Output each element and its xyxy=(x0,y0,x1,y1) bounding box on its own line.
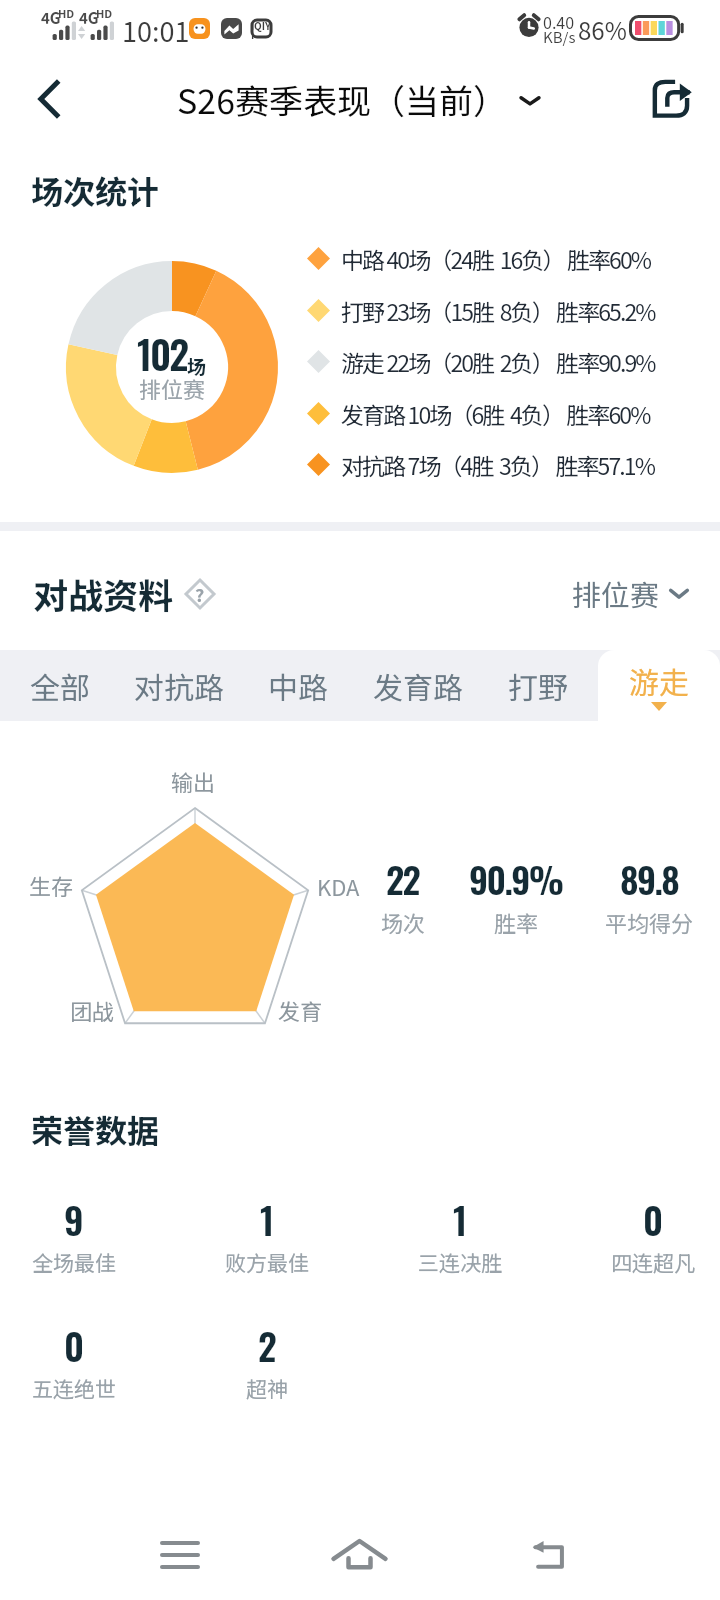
staticText: 三连决胜 xyxy=(418,1247,502,1277)
staticText: 打野 xyxy=(508,664,568,707)
button[interactable]: Back xyxy=(509,1524,589,1586)
button[interactable]: 对抗路 xyxy=(119,650,238,721)
button[interactable]: Help xyxy=(184,578,216,610)
staticText: ? xyxy=(195,581,205,607)
staticText: 22 xyxy=(386,852,420,905)
staticText: 4G xyxy=(41,7,61,29)
staticText: 10:01 xyxy=(122,11,190,50)
button[interactable]: S26赛季表现（当前） xyxy=(177,75,544,124)
staticText: 对抗路 7场（4胜 3负） 胜率57.1% xyxy=(341,448,654,481)
staticText: 0 xyxy=(64,1318,85,1373)
staticText: 2 xyxy=(258,1318,277,1373)
button[interactable]: Share xyxy=(646,73,698,125)
staticText: 场次 xyxy=(381,906,426,938)
staticText: 五连绝世 xyxy=(32,1373,116,1403)
staticText: 中路 xyxy=(268,664,328,707)
staticText: 打野 23场（15胜 8负） 胜率65.2% xyxy=(341,294,655,327)
staticText: 荣誉数据 xyxy=(31,1106,160,1152)
staticText: 9 xyxy=(64,1192,84,1247)
staticText: 全场最佳 xyxy=(32,1247,116,1277)
staticText: KB/s xyxy=(543,26,576,48)
staticText: iQIYI xyxy=(251,18,272,39)
staticText: 场 xyxy=(187,352,207,380)
staticText: 团战 xyxy=(70,994,115,1026)
button[interactable]: Home xyxy=(319,1524,399,1586)
staticText: 89.8 xyxy=(620,852,679,905)
staticText: 90.9% xyxy=(469,852,563,905)
staticText: 0 xyxy=(643,1192,664,1247)
staticText: 平均得分 xyxy=(605,906,694,938)
staticText: 场次统计 xyxy=(31,167,160,213)
staticText: HD xyxy=(58,5,75,21)
staticText: 4G xyxy=(79,7,99,29)
staticText: 胜率 xyxy=(494,906,539,938)
staticText: 1 xyxy=(453,1192,468,1247)
staticText: 对战资料 xyxy=(33,568,174,619)
staticText: 对抗路 xyxy=(134,664,224,707)
staticText: 发育路 10场（6胜 4负） 胜率60% xyxy=(341,397,650,430)
staticText: 中路 40场（24胜 16负） 胜率60% xyxy=(341,242,651,275)
staticText: 败方最佳 xyxy=(225,1247,309,1277)
staticText: 0.40 xyxy=(543,10,575,33)
button[interactable]: 排位赛 xyxy=(572,572,692,614)
staticText: 排位赛 xyxy=(139,372,206,404)
staticText: 输出 xyxy=(171,765,216,797)
button[interactable]: Back xyxy=(24,71,80,127)
staticText: 超神 xyxy=(246,1373,288,1403)
staticText: HD xyxy=(96,5,113,21)
button[interactable]: 游走 xyxy=(598,650,720,721)
staticText: 102 xyxy=(137,324,187,382)
button[interactable]: Recent apps xyxy=(140,1524,220,1586)
button[interactable]: 全部 xyxy=(0,650,119,721)
staticText: 1 xyxy=(260,1192,275,1247)
staticText: 86% xyxy=(578,12,627,47)
staticText: 发育路 xyxy=(373,664,463,707)
staticText: 四连超凡 xyxy=(611,1247,695,1277)
button[interactable]: 打野 xyxy=(478,650,598,721)
staticText: 游走 xyxy=(629,659,689,702)
button[interactable]: 发育路 xyxy=(358,650,478,721)
staticText: 游走 22场（20胜 2负） 胜率90.9% xyxy=(341,345,655,378)
staticText: 排位赛 xyxy=(572,572,660,614)
staticText: 生存 xyxy=(29,869,74,901)
staticText: 发育 xyxy=(278,994,323,1026)
staticText: S26赛季表现（当前） xyxy=(177,75,508,124)
staticText: 全部 xyxy=(30,664,90,707)
button[interactable]: 中路 xyxy=(238,650,358,721)
staticText: KDA xyxy=(317,870,360,902)
